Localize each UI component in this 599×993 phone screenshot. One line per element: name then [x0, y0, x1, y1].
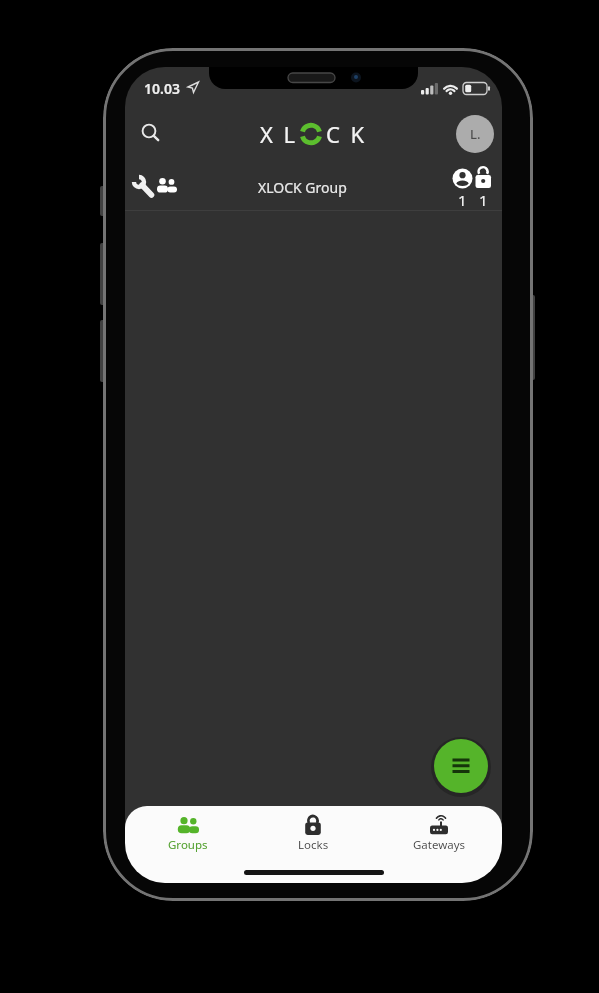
staticText: Gateways: [413, 837, 466, 853]
button[interactable]: Locks: [250, 806, 376, 883]
button[interactable]: Gateways: [376, 806, 502, 883]
staticText: 1: [458, 190, 467, 210]
staticText: 1: [479, 190, 488, 210]
staticText: X L: [260, 119, 298, 149]
staticText: L.: [470, 125, 481, 143]
button[interactable]: Groups: [125, 806, 250, 883]
staticText: Locks: [298, 837, 329, 853]
button[interactable]: [135, 117, 167, 149]
staticText: XLOCK Group: [258, 178, 347, 197]
staticText: Groups: [168, 837, 208, 853]
button[interactable]: [434, 739, 488, 793]
button[interactable]: L.: [456, 115, 494, 153]
staticText: 10.03: [144, 79, 180, 98]
staticText: C K: [326, 119, 367, 149]
button[interactable]: XLOCK Group: [125, 165, 502, 210]
